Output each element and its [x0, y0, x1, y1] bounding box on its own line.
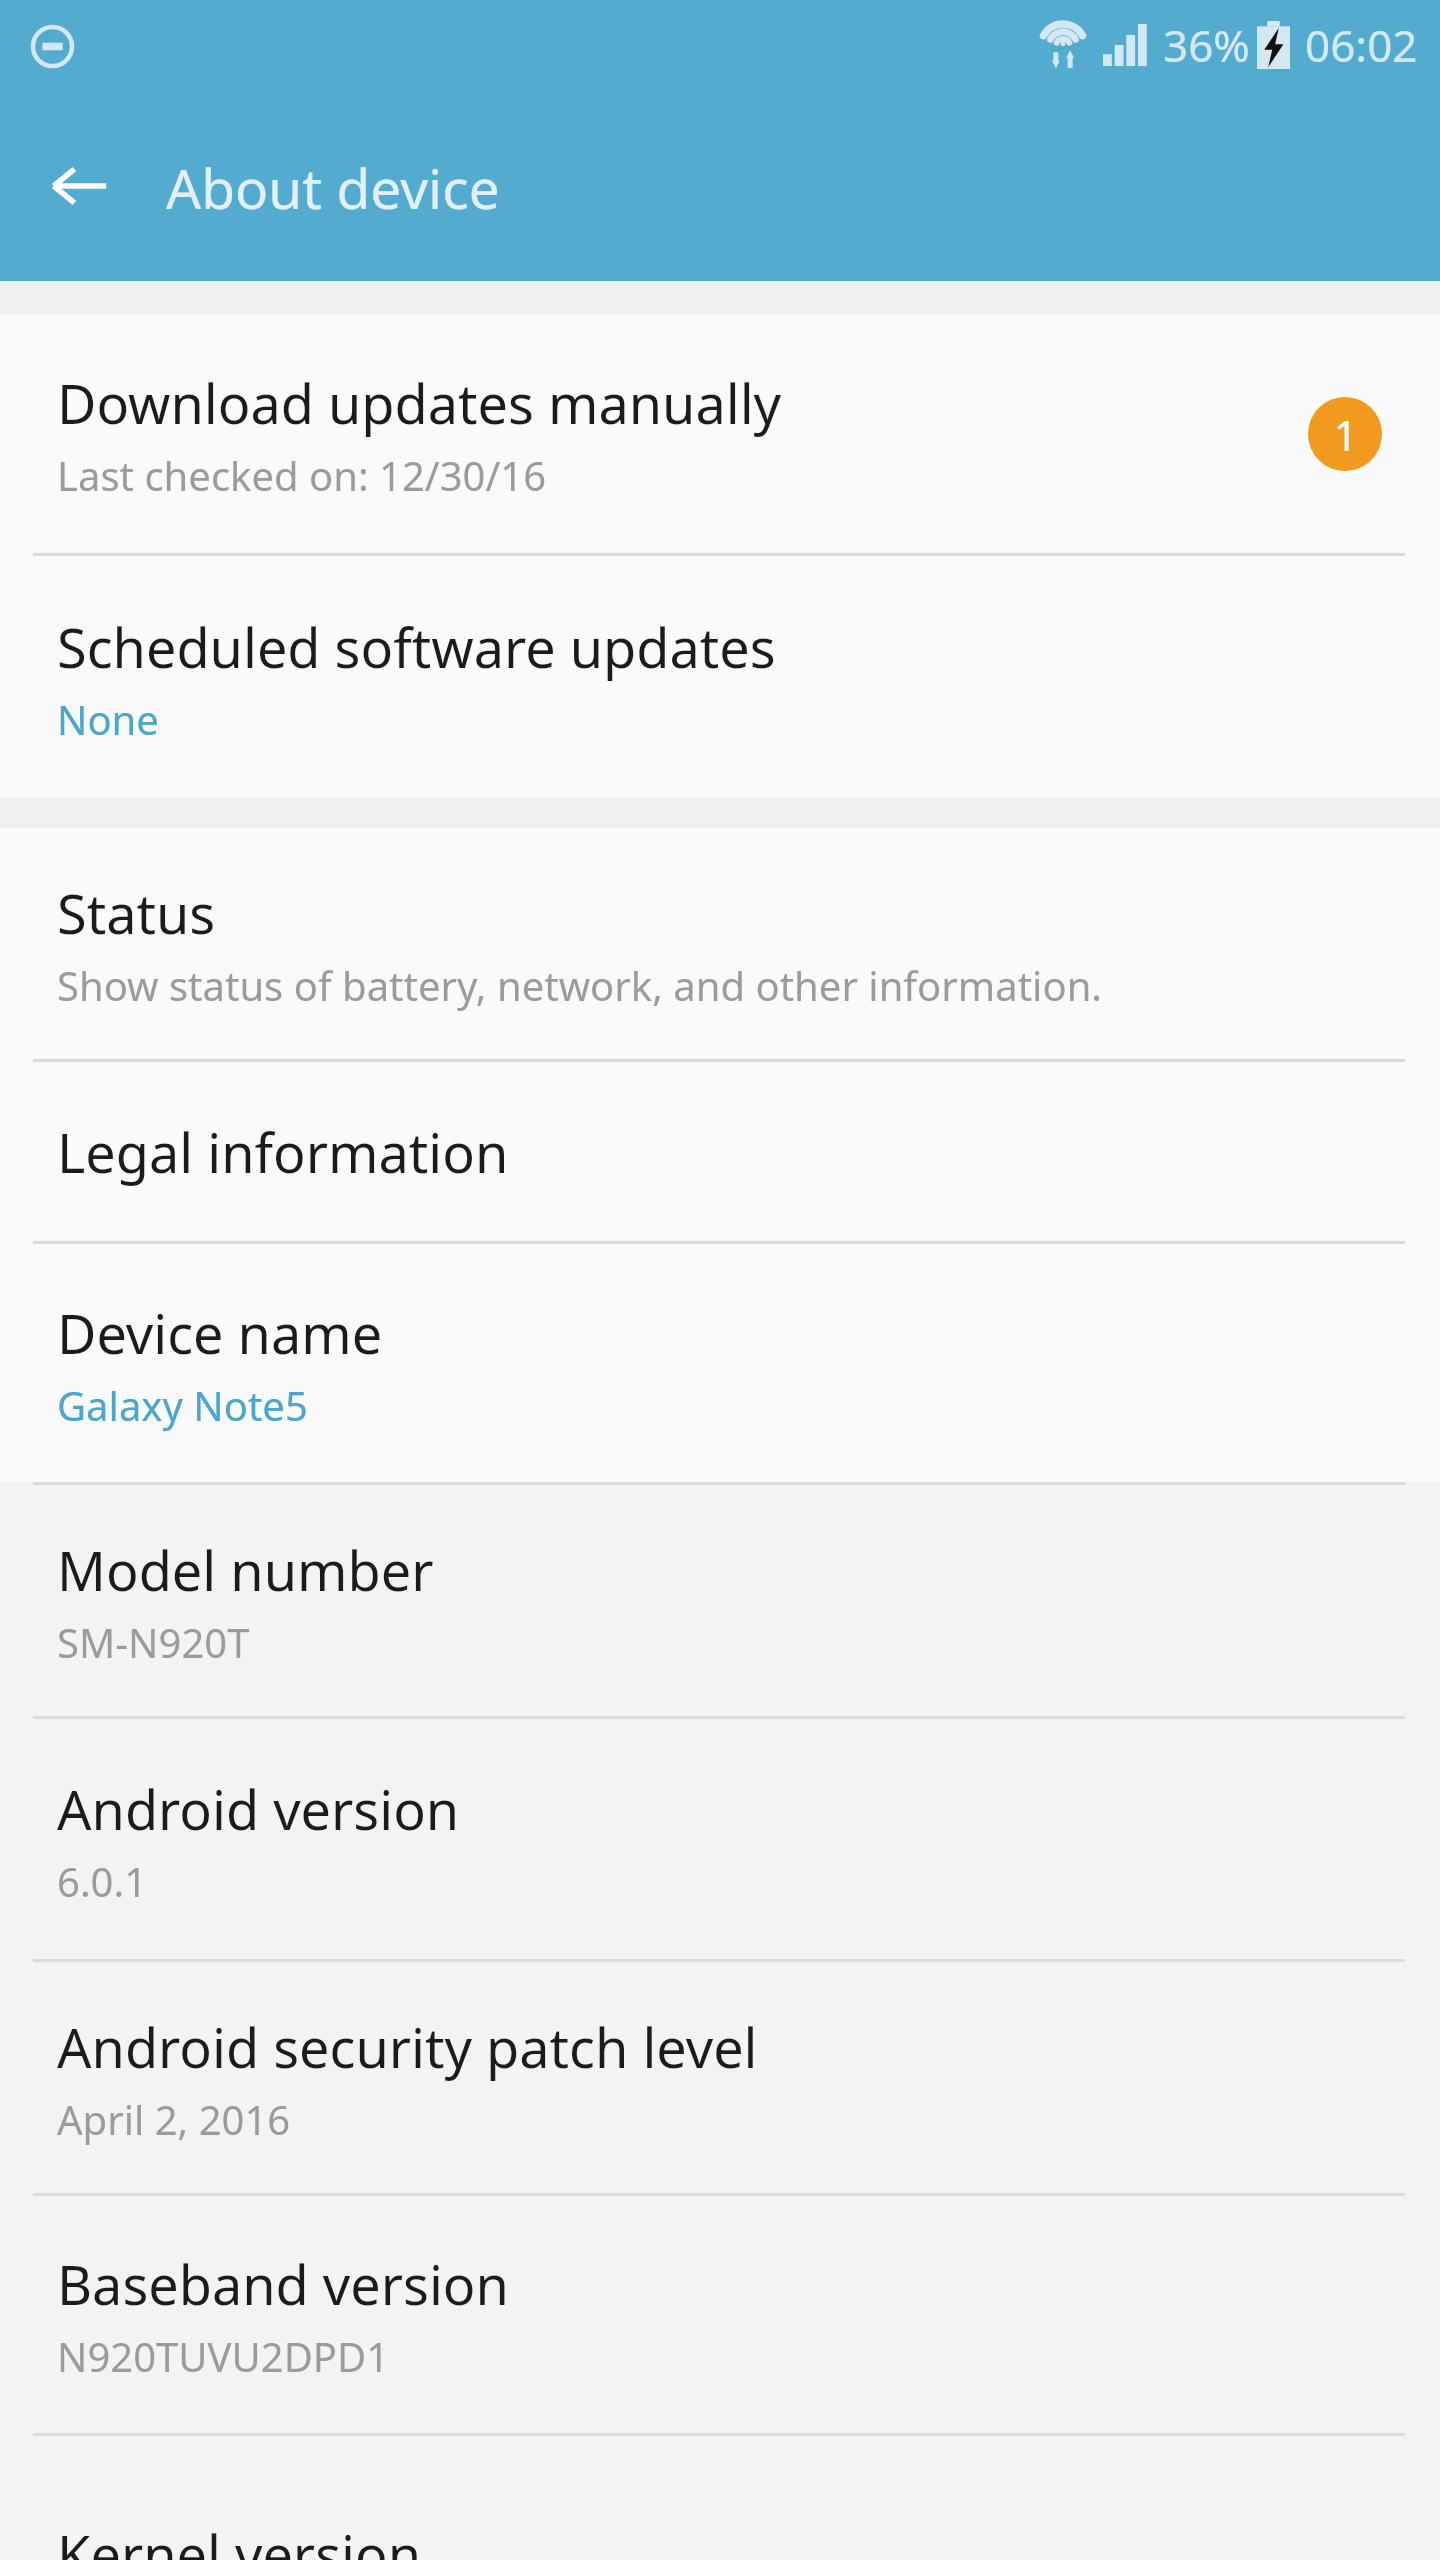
staticText: None	[57, 692, 159, 746]
staticText: Scheduled software updates	[57, 610, 776, 684]
staticText: 06:02	[1305, 15, 1418, 75]
button[interactable]: Baseband version	[0, 2197, 1440, 2433]
button[interactable]: Device name	[0, 1245, 1440, 1482]
button[interactable]: Scheduled software updates	[0, 557, 1440, 798]
staticText: Android version	[57, 1772, 460, 1846]
staticText: Download updates manually	[57, 366, 782, 440]
staticText: Last checked on: 12/30/16	[57, 448, 547, 502]
button[interactable]: Model number	[0, 1486, 1440, 1716]
staticText: Status	[57, 876, 216, 950]
staticText: Galaxy Note5	[57, 1378, 308, 1432]
staticText: Device name	[57, 1296, 383, 1370]
staticText: SM-N920T	[57, 1615, 250, 1669]
button[interactable]: Download updates manually	[0, 315, 1440, 553]
button[interactable]: Legal information	[0, 1063, 1440, 1241]
button[interactable]: Kernel version	[0, 2437, 1440, 2560]
staticText: Kernel version	[57, 2517, 422, 2560]
staticText: 36%	[1163, 15, 1250, 75]
staticText: 6.0.1	[57, 1854, 148, 1908]
staticText: Baseband version	[57, 2247, 509, 2321]
staticText: April 2, 2016	[57, 2092, 291, 2146]
button[interactable]: Android version	[0, 1720, 1440, 1959]
staticText: N920TUVU2DPD1	[57, 2329, 390, 2383]
button[interactable]: Navigate up	[24, 131, 134, 241]
staticText: Show status of battery, network, and oth…	[57, 958, 1103, 1012]
staticText: 1	[1333, 406, 1358, 463]
staticText: About device	[166, 150, 500, 225]
staticText: Legal information	[57, 1115, 509, 1189]
staticText: Model number	[57, 1533, 434, 1607]
staticText: Android security patch level	[57, 2010, 758, 2084]
button[interactable]: Status	[0, 828, 1440, 1059]
button[interactable]: Android security patch level	[0, 1963, 1440, 2193]
